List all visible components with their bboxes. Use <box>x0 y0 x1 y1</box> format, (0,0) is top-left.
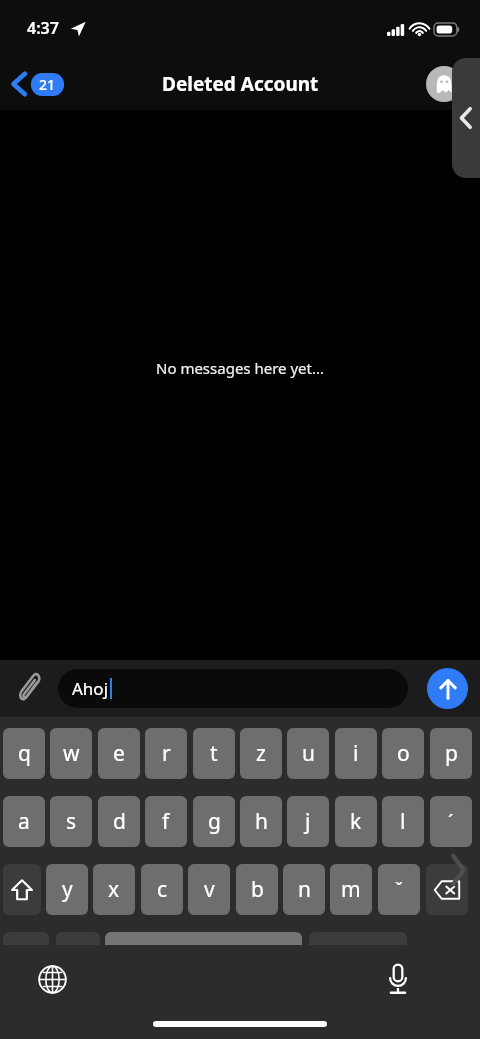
other: Back <box>12 72 26 96</box>
staticText: a <box>18 807 30 836</box>
staticText: o <box>397 739 410 768</box>
button[interactable]: Attach <box>10 669 50 709</box>
button[interactable]: Emoji <box>56 932 100 983</box>
button[interactable]: Backspace <box>426 864 468 915</box>
staticText: p <box>445 739 458 768</box>
button[interactable]: g <box>193 796 235 847</box>
staticText: f <box>162 807 170 836</box>
button[interactable]: a <box>3 796 45 847</box>
button[interactable]: u <box>287 728 329 779</box>
staticText: v <box>204 875 215 904</box>
button[interactable]: Ahoj <box>58 669 408 708</box>
button[interactable]: e <box>98 728 140 779</box>
staticText: q <box>18 739 31 768</box>
staticText: b <box>251 875 264 904</box>
staticText: Ahoj <box>72 677 109 700</box>
staticText: n <box>298 875 311 904</box>
button[interactable]: h <box>240 796 282 847</box>
button[interactable]: Mezerník <box>105 932 302 983</box>
staticText: ´ <box>448 809 454 835</box>
staticText: s <box>66 807 77 836</box>
button[interactable]: q <box>3 728 45 779</box>
button[interactable]: w <box>50 728 92 779</box>
button[interactable]: t <box>193 728 235 779</box>
button[interactable]: Send <box>427 668 468 709</box>
staticText: y <box>62 875 73 904</box>
button[interactable]: b <box>236 864 278 915</box>
button[interactable]: Change language <box>30 957 74 1001</box>
button[interactable]: s <box>50 796 92 847</box>
staticText: z <box>256 739 266 768</box>
button[interactable]: Open panel <box>452 58 480 178</box>
button[interactable]: z <box>240 728 282 779</box>
staticText: 21 <box>39 75 56 94</box>
staticText: m <box>341 875 361 904</box>
button[interactable]: m <box>330 864 372 915</box>
button[interactable]: f <box>145 796 187 847</box>
staticText: l <box>400 807 406 836</box>
staticText: g <box>208 807 221 836</box>
staticText: w <box>63 739 80 768</box>
staticText: d <box>113 807 126 836</box>
staticText: e <box>113 739 125 768</box>
button[interactable]: p <box>430 728 472 779</box>
staticText: No messages here yet... <box>156 358 324 378</box>
staticText: ˇ <box>395 877 403 903</box>
button[interactable]: 123 <box>3 932 49 983</box>
button[interactable]: v <box>188 864 230 915</box>
button[interactable]: Enter <box>309 932 407 983</box>
button[interactable]: ˇ <box>378 864 420 915</box>
staticText: r <box>162 739 171 768</box>
button[interactable]: j <box>287 796 329 847</box>
button[interactable]: r <box>145 728 187 779</box>
staticText: h <box>255 807 268 836</box>
staticText: t <box>210 739 218 768</box>
staticText: k <box>350 807 362 836</box>
button[interactable]: i <box>335 728 377 779</box>
button[interactable]: o <box>382 728 424 779</box>
button[interactable]: Voice input <box>376 957 420 1001</box>
button[interactable]: Shift <box>3 864 41 915</box>
button[interactable]: d <box>98 796 140 847</box>
button[interactable]: Back <box>8 68 68 100</box>
button[interactable]: n <box>283 864 325 915</box>
button[interactable]: y <box>46 864 88 915</box>
button[interactable]: c <box>141 864 183 915</box>
staticText: j <box>305 807 311 836</box>
staticText: x <box>108 875 120 904</box>
button[interactable]: k <box>335 796 377 847</box>
staticText: u <box>302 739 315 768</box>
button[interactable]: Profile <box>426 66 462 102</box>
staticText: i <box>353 739 359 768</box>
staticText: 4:37 <box>27 17 59 39</box>
button[interactable]: Expand <box>450 853 466 887</box>
staticText: Deleted Account <box>162 71 319 97</box>
button[interactable]: ´ <box>430 796 472 847</box>
staticText: c <box>157 875 168 904</box>
button[interactable]: l <box>382 796 424 847</box>
button[interactable]: x <box>93 864 135 915</box>
